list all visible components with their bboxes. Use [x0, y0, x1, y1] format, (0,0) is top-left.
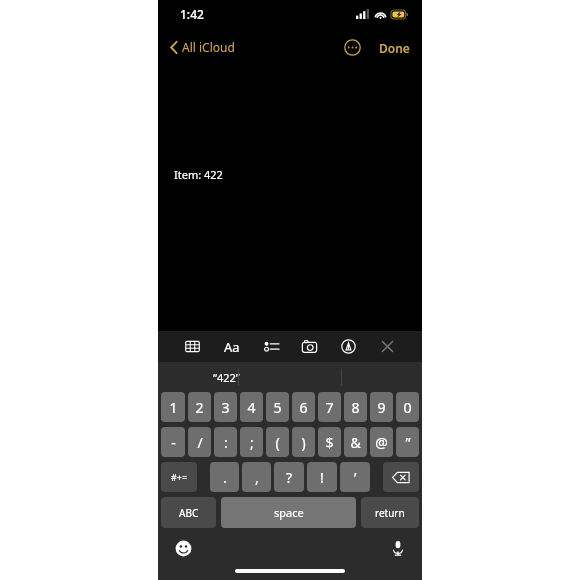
- button[interactable]: .: [210, 462, 239, 492]
- button[interactable]: ”: [396, 427, 419, 457]
- staticText: &: [350, 433, 361, 452]
- button[interactable]: 3: [214, 392, 237, 422]
- button[interactable]: More options: [340, 35, 365, 60]
- button[interactable]: ’: [340, 462, 370, 492]
- staticText: 1:42: [180, 6, 204, 22]
- button[interactable]: 4: [240, 392, 263, 422]
- button[interactable]: “422”: [213, 370, 240, 385]
- staticText: ’: [354, 468, 357, 487]
- staticText: ;: [250, 433, 254, 452]
- button[interactable]: 7: [318, 392, 341, 422]
- button[interactable]: All iCloud: [164, 35, 241, 59]
- button[interactable]: Aa: [221, 335, 243, 359]
- staticText: /: [197, 433, 203, 452]
- staticText: ): [301, 433, 306, 452]
- button[interactable]: 5: [266, 392, 289, 422]
- staticText: 1: [169, 398, 178, 417]
- button[interactable]: return: [361, 497, 419, 528]
- staticText: ”: [405, 433, 411, 452]
- staticText: 7: [325, 398, 334, 417]
- button[interactable]: /: [188, 427, 211, 457]
- button[interactable]: Emoji: [172, 537, 195, 560]
- staticText: 5: [273, 398, 282, 417]
- staticText: -: [171, 433, 176, 452]
- button[interactable]: Dictation: [387, 537, 409, 559]
- button[interactable]: ?: [274, 462, 304, 492]
- staticText: 8: [351, 398, 360, 417]
- button[interactable]: Table: [182, 336, 203, 357]
- staticText: #+=: [171, 471, 188, 483]
- button[interactable]: 2: [188, 392, 211, 422]
- button[interactable]: ;: [240, 427, 263, 457]
- button[interactable]: ): [292, 427, 315, 457]
- staticText: 0: [403, 398, 412, 417]
- button[interactable]: @: [370, 427, 393, 457]
- staticText: 2: [195, 398, 204, 417]
- staticText: 4: [247, 398, 256, 417]
- button[interactable]: 1: [161, 392, 185, 422]
- staticText: Aa: [224, 338, 240, 356]
- button[interactable]: Checklist: [261, 336, 282, 357]
- staticText: ,: [255, 468, 259, 487]
- staticText: :: [224, 433, 228, 452]
- button[interactable]: 0: [396, 392, 419, 422]
- button[interactable]: Markup: [338, 336, 359, 357]
- staticText: Item: 422: [174, 167, 223, 182]
- button[interactable]: Done: [375, 36, 414, 60]
- button[interactable]: 6: [292, 392, 315, 422]
- button[interactable]: ABC: [161, 497, 216, 528]
- staticText: .: [223, 468, 227, 487]
- button[interactable]: space: [221, 497, 356, 528]
- staticText: return: [375, 506, 405, 520]
- staticText: (: [275, 433, 280, 452]
- staticText: 3: [221, 398, 230, 417]
- staticText: $: [325, 433, 334, 452]
- button[interactable]: 9: [370, 392, 393, 422]
- staticText: ABC: [179, 506, 199, 520]
- staticText: !: [320, 468, 324, 487]
- staticText: 9: [377, 398, 386, 417]
- staticText: All iCloud: [182, 39, 235, 55]
- staticText: 6: [299, 398, 308, 417]
- button[interactable]: $: [318, 427, 341, 457]
- button[interactable]: &: [344, 427, 367, 457]
- button[interactable]: Camera: [299, 336, 320, 357]
- staticText: space: [274, 505, 304, 520]
- button[interactable]: -: [161, 427, 185, 457]
- button[interactable]: 8: [344, 392, 367, 422]
- staticText: ?: [286, 468, 293, 487]
- button[interactable]: Close keyboard: [377, 336, 398, 357]
- staticText: @: [375, 433, 388, 452]
- button[interactable]: ,: [242, 462, 271, 492]
- button[interactable]: (: [266, 427, 289, 457]
- button[interactable]: #+=: [161, 462, 197, 492]
- button[interactable]: !: [307, 462, 337, 492]
- button[interactable]: Backspace: [383, 462, 419, 492]
- button[interactable]: :: [214, 427, 237, 457]
- staticText: Done: [379, 40, 410, 56]
